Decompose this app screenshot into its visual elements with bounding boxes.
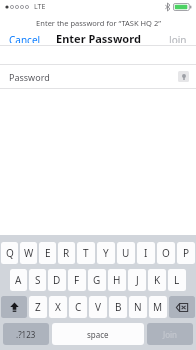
button[interactable]: D: [48, 269, 66, 291]
button[interactable]: T: [77, 242, 95, 264]
staticText: Password: [9, 71, 50, 83]
button[interactable]: R: [58, 242, 75, 264]
button[interactable]: B: [109, 296, 127, 318]
staticText: U: [122, 246, 130, 260]
button[interactable]: W: [20, 242, 37, 264]
button[interactable]: U: [117, 242, 135, 264]
button[interactable]: .?123: [3, 323, 49, 345]
button[interactable]: V: [89, 296, 107, 318]
button[interactable]: Shift: [1, 296, 27, 318]
staticText: space: [87, 329, 109, 340]
staticText: Enter Password: [56, 31, 141, 45]
button[interactable]: C: [69, 296, 87, 318]
staticText: J: [136, 273, 139, 287]
button[interactable]: M: [149, 296, 167, 318]
staticText: K: [154, 273, 161, 287]
staticText: Join: [169, 33, 187, 43]
button[interactable]: Join: [147, 323, 193, 345]
button[interactable]: F: [68, 269, 86, 291]
button[interactable]: L: [168, 269, 186, 291]
staticText: I: [144, 246, 148, 260]
button[interactable]: E: [39, 242, 56, 264]
staticText: S: [35, 273, 41, 287]
staticText: Cancel: [9, 33, 41, 43]
button[interactable]: Cancel: [6, 31, 44, 45]
staticText: Y: [103, 246, 109, 260]
button[interactable]: Q: [1, 242, 18, 264]
staticText: E: [45, 246, 51, 260]
staticText: M: [153, 300, 163, 314]
staticText: H: [113, 273, 121, 287]
button[interactable]: H: [108, 269, 126, 291]
staticText: T: [83, 246, 89, 260]
staticText: W: [24, 246, 34, 260]
staticText: F: [74, 273, 80, 287]
button[interactable]: space: [52, 323, 144, 345]
staticText: P: [183, 246, 190, 260]
button[interactable]: Z: [29, 296, 47, 318]
button[interactable]: K: [148, 269, 166, 291]
staticText: Enter the password for “TASK HQ 2”: [36, 18, 161, 28]
other: Password key: [178, 71, 189, 82]
button[interactable]: A: [10, 269, 27, 291]
staticText: B: [115, 300, 122, 314]
button[interactable]: J: [128, 269, 146, 291]
button[interactable]: N: [129, 296, 147, 318]
button[interactable]: P: [177, 242, 195, 264]
staticText: X: [55, 300, 61, 314]
button[interactable]: Y: [97, 242, 115, 264]
button[interactable]: Join: [166, 31, 190, 45]
staticText: R: [63, 246, 70, 260]
staticText: V: [95, 300, 101, 314]
staticText: O: [162, 246, 170, 260]
staticText: C: [75, 300, 82, 314]
button[interactable]: Password: [0, 65, 196, 88]
staticText: A: [15, 273, 22, 287]
button[interactable]: I: [137, 242, 155, 264]
staticText: N: [134, 300, 142, 314]
button[interactable]: G: [88, 269, 106, 291]
staticText: L: [174, 273, 180, 287]
staticText: G: [93, 273, 101, 287]
staticText: Z: [35, 300, 41, 314]
staticText: Join: [163, 329, 178, 340]
button[interactable]: S: [29, 269, 46, 291]
button[interactable]: X: [49, 296, 67, 318]
staticText: D: [53, 273, 61, 287]
button[interactable]: Backspace: [169, 296, 195, 318]
staticText: Q: [6, 246, 14, 260]
staticText: .?123: [16, 329, 36, 340]
staticText: LTE: [34, 2, 46, 12]
button[interactable]: O: [157, 242, 175, 264]
